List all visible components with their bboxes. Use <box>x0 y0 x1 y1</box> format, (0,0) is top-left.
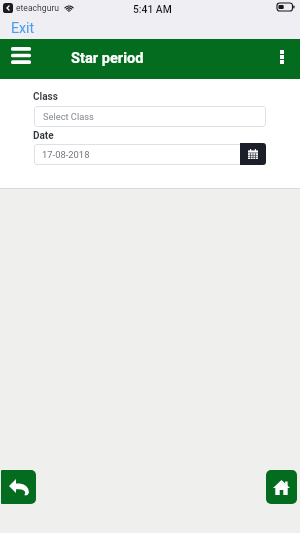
button[interactable]: 17-08-2018 <box>34 144 241 165</box>
button[interactable]: Home <box>266 470 297 504</box>
staticText: Select Class <box>43 111 94 122</box>
button[interactable]: Select Class <box>34 106 266 127</box>
staticText: Exit <box>11 20 35 37</box>
staticText: 17-08-2018 <box>42 149 90 160</box>
button[interactable]: Pick date <box>240 143 266 165</box>
button[interactable]: Back <box>1 470 36 504</box>
staticText: Date <box>33 130 54 142</box>
staticText: Class <box>33 91 58 103</box>
button[interactable]: Back to eteachguru <box>3 3 74 13</box>
staticText: Star period <box>71 49 144 66</box>
button[interactable]: More options <box>270 43 294 71</box>
staticText: eteachguru <box>16 3 60 13</box>
button[interactable]: Menu <box>4 40 37 70</box>
staticText: 5:41 AM <box>133 3 172 15</box>
button[interactable]: Exit <box>8 19 38 38</box>
